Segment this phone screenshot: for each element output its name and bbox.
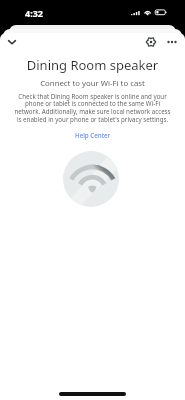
staticText: Help Center — [75, 131, 111, 139]
button[interactable]: More options — [163, 33, 181, 51]
button[interactable]: Collapse — [3, 33, 21, 51]
staticText: Connect to your Wi-Fi to cast — [0, 78, 185, 89]
button[interactable]: Help Center — [71, 129, 115, 141]
staticText: Check that Dining Room speaker is online… — [12, 92, 173, 124]
staticText: Dining Room speaker — [0, 56, 185, 74]
button[interactable]: Settings — [142, 33, 160, 51]
staticText: 4:32 — [25, 7, 43, 19]
